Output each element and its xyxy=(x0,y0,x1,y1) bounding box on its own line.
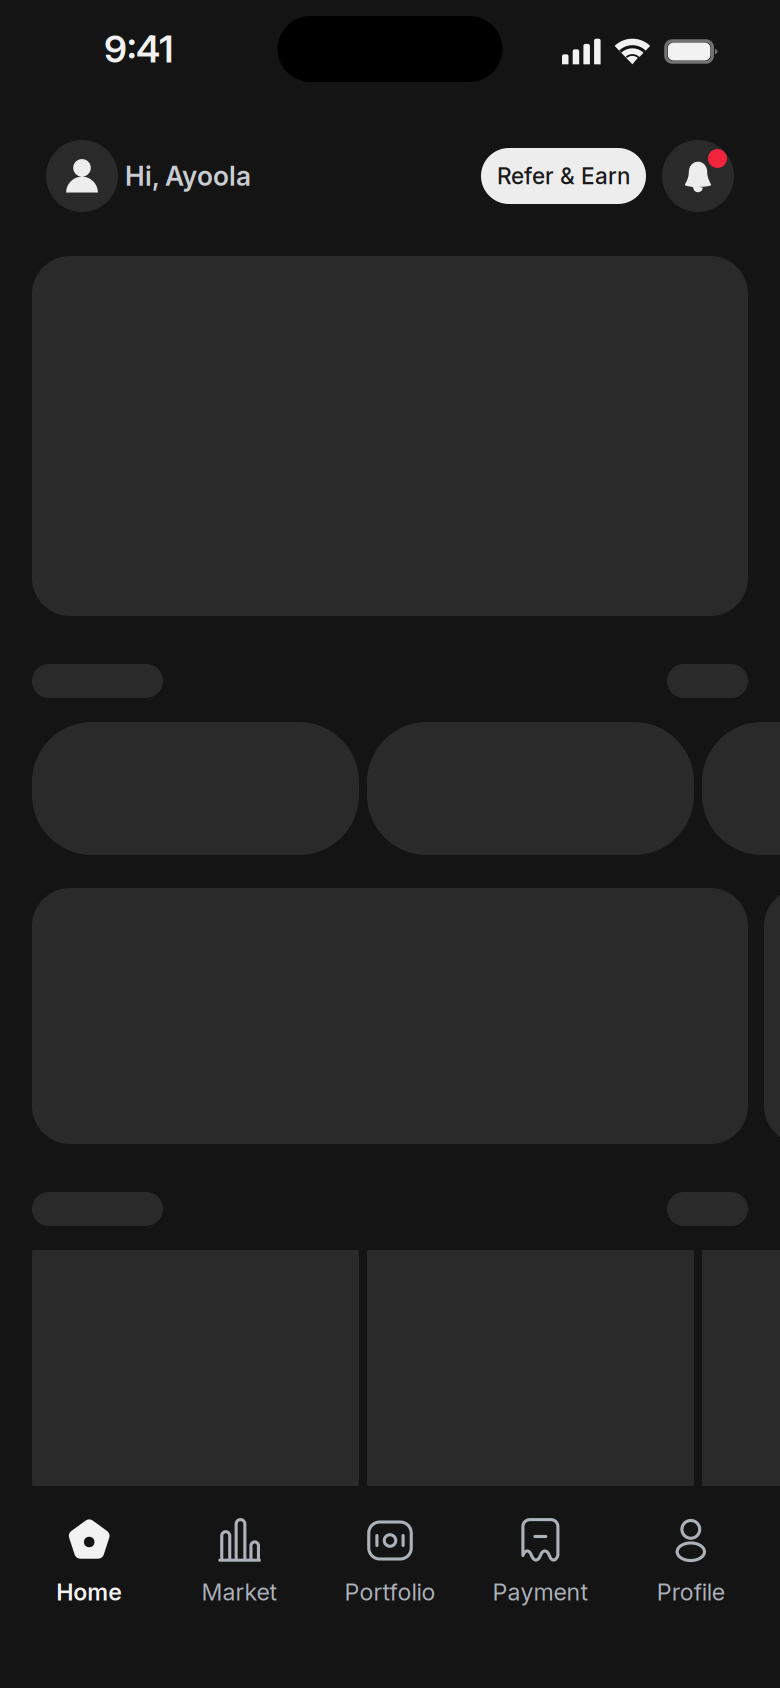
button[interactable]: Notifications xyxy=(662,140,734,212)
button[interactable]: Payment xyxy=(465,1486,616,1688)
staticText: Hi, Ayoola xyxy=(125,160,251,192)
button[interactable]: Hi, Ayoola xyxy=(46,140,251,212)
staticText: Profile xyxy=(657,1578,725,1606)
staticText: 9:41 xyxy=(104,26,174,72)
button[interactable]: Market xyxy=(164,1486,315,1688)
button[interactable]: Home xyxy=(14,1486,164,1688)
button[interactable]: Profile xyxy=(616,1486,766,1688)
button[interactable]: Refer & Earn xyxy=(481,148,646,204)
staticText: Refer & Earn xyxy=(497,162,630,190)
staticText: Market xyxy=(202,1578,278,1606)
staticText: Portfolio xyxy=(344,1578,435,1606)
staticText: Payment xyxy=(492,1578,588,1606)
staticText: Home xyxy=(56,1578,122,1606)
button[interactable]: Portfolio xyxy=(315,1486,465,1688)
